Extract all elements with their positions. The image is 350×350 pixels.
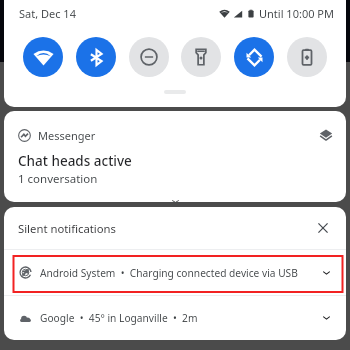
button[interactable]: Clear all notifications	[312, 217, 334, 239]
button[interactable]: Auto rotate	[234, 37, 274, 77]
button[interactable]: Android System notification	[4, 250, 346, 295]
button[interactable]: Bluetooth	[76, 37, 116, 77]
button[interactable]: Wi-Fi	[23, 37, 63, 77]
button[interactable]: Google weather notification	[4, 296, 346, 340]
staticText: Chat heads active	[18, 152, 132, 170]
staticText: Until 10:00 PM	[259, 6, 334, 21]
button[interactable]: Battery saver	[287, 37, 327, 77]
staticText: Google • 45° in Loganville • 2m	[40, 311, 198, 325]
staticText: Silent notifications	[18, 221, 116, 236]
staticText: Messenger	[38, 128, 96, 143]
button[interactable]: Do not disturb	[129, 37, 169, 77]
button[interactable]: Flashlight	[181, 37, 221, 77]
staticText: Android System • Charging connected devi…	[40, 266, 298, 280]
button[interactable]: Bubble settings	[317, 126, 335, 144]
staticText: 1 conversation	[18, 171, 98, 187]
button[interactable]: Messenger	[4, 111, 346, 202]
staticText: Sat, Dec 14	[19, 6, 76, 21]
